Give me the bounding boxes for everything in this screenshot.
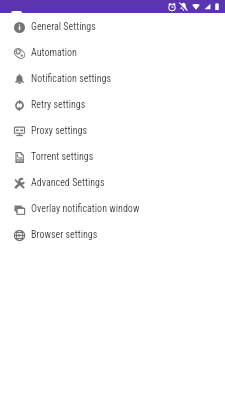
- button[interactable]: Advanced Settings: [0, 170, 225, 196]
- button[interactable]: Automation: [0, 40, 225, 66]
- staticText: Advanced Settings: [31, 177, 105, 189]
- button[interactable]: Browser settings: [0, 222, 225, 248]
- staticText: Browser settings: [31, 229, 98, 241]
- staticText: Notification settings: [31, 73, 111, 85]
- staticText: Torrent settings: [31, 151, 94, 163]
- staticText: Automation: [31, 47, 77, 59]
- button[interactable]: Retry settings: [0, 92, 225, 118]
- staticText: Overlay notification window: [31, 203, 140, 215]
- button[interactable]: Overlay notification window: [0, 196, 225, 222]
- button[interactable]: Notification settings: [0, 66, 225, 92]
- button[interactable]: Proxy settings: [0, 118, 225, 144]
- staticText: General Settings: [31, 21, 96, 33]
- button[interactable]: General Settings: [0, 14, 225, 40]
- staticText: Retry settings: [31, 99, 86, 111]
- staticText: Proxy settings: [31, 125, 88, 137]
- button[interactable]: Torrent settings: [0, 144, 225, 170]
